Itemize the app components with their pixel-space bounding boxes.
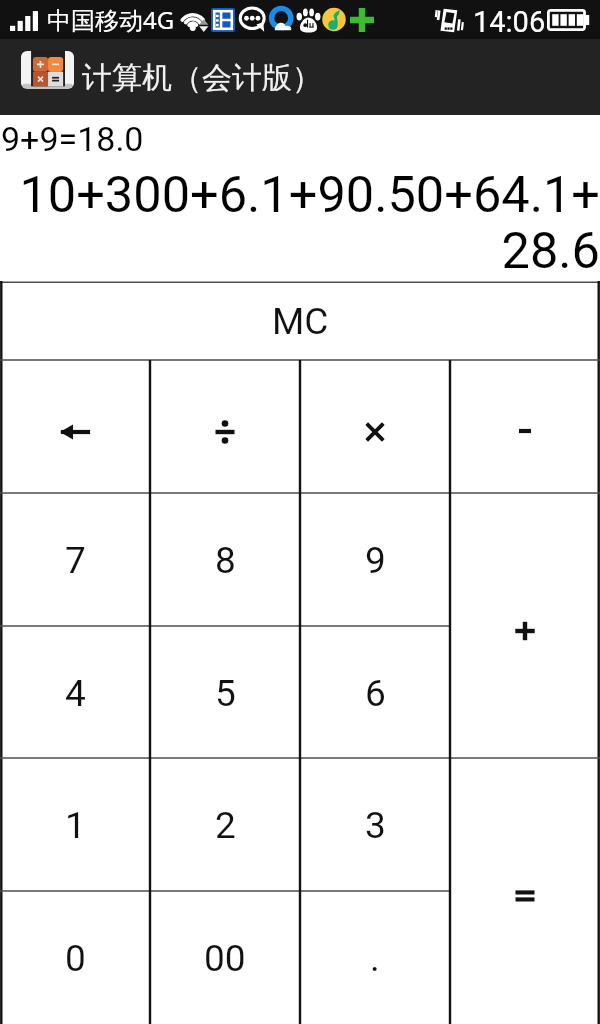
staticText: 10+300+6.1+90.50+64.1+28.6 xyxy=(16,165,600,281)
staticText: 4 xyxy=(65,672,86,715)
staticText: . xyxy=(370,937,380,980)
button[interactable]: 7 xyxy=(0,493,150,626)
button[interactable]: 3 xyxy=(300,758,450,891)
button[interactable]: 4 xyxy=(0,626,150,758)
button[interactable]: 2 xyxy=(150,758,300,891)
button[interactable]: Multiply xyxy=(300,360,450,493)
button[interactable]: Divide xyxy=(150,360,300,493)
staticText: 9 xyxy=(365,539,386,582)
staticText: 中国移动4G xyxy=(47,3,175,36)
button[interactable]: 1 xyxy=(0,758,150,891)
button[interactable]: 6 xyxy=(300,626,450,758)
button[interactable]: Backspace xyxy=(0,360,150,493)
staticText: 3 xyxy=(365,804,386,847)
button[interactable]: 9 xyxy=(300,493,450,626)
button[interactable]: . xyxy=(300,891,450,1024)
button[interactable]: Plus xyxy=(450,493,600,758)
staticText: 8 xyxy=(215,539,236,582)
button[interactable]: 00 xyxy=(150,891,300,1024)
staticText: 00 xyxy=(204,937,246,980)
staticText: 9+9=18.0 xyxy=(1,119,600,159)
button[interactable]: MC xyxy=(0,281,600,360)
staticText: 计算机（会计版） xyxy=(82,59,322,97)
staticText: MC xyxy=(272,300,329,343)
button[interactable]: Minus xyxy=(450,360,600,493)
staticText: 0 xyxy=(65,937,86,980)
staticText: 1 xyxy=(65,804,86,847)
button[interactable]: 8 xyxy=(150,493,300,626)
other: Notification xyxy=(211,8,235,32)
staticText: 6 xyxy=(365,672,386,715)
button[interactable]: 5 xyxy=(150,626,300,758)
button[interactable]: 0 xyxy=(0,891,150,1024)
staticText: 2 xyxy=(215,804,236,847)
staticText: 5 xyxy=(215,672,236,715)
staticText: 7 xyxy=(65,539,86,582)
button[interactable]: Equals xyxy=(450,758,600,1024)
staticText: 14:06 xyxy=(473,5,546,39)
